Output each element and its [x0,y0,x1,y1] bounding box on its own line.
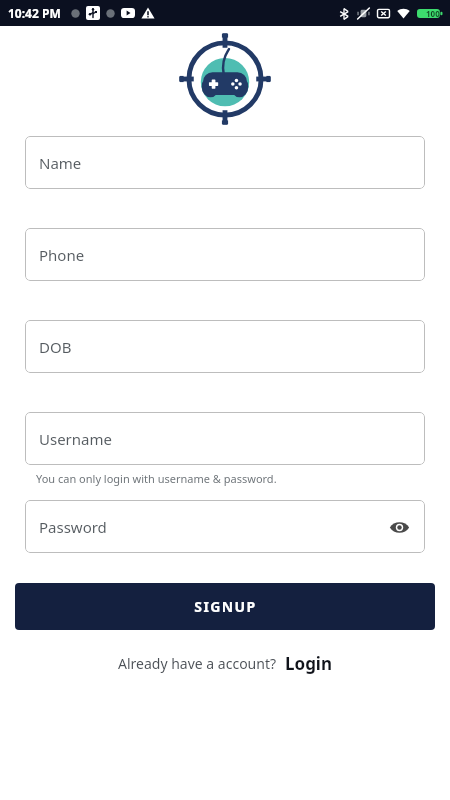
button[interactable]: SIGNUP [15,583,435,630]
staticText: Phone [39,245,85,265]
staticText: 10:42 PM [8,5,61,21]
button[interactable]: Password [25,500,425,553]
staticText: Password [39,517,107,537]
button[interactable]: Username [25,412,425,465]
button[interactable]: Name [25,136,425,189]
button[interactable]: Show password [387,515,411,539]
button[interactable]: DOB [25,320,425,373]
staticText: 100 [426,8,440,19]
button[interactable]: Login [285,652,333,675]
staticText: Name [39,153,82,173]
staticText: Login [285,652,333,675]
staticText: Username [39,429,112,449]
staticText: Already have a account? [118,654,277,673]
staticText: SIGNUP [194,597,257,616]
staticText: DOB [39,337,72,357]
staticText: You can only login with username & passw… [36,471,277,486]
button[interactable]: Phone [25,228,425,281]
